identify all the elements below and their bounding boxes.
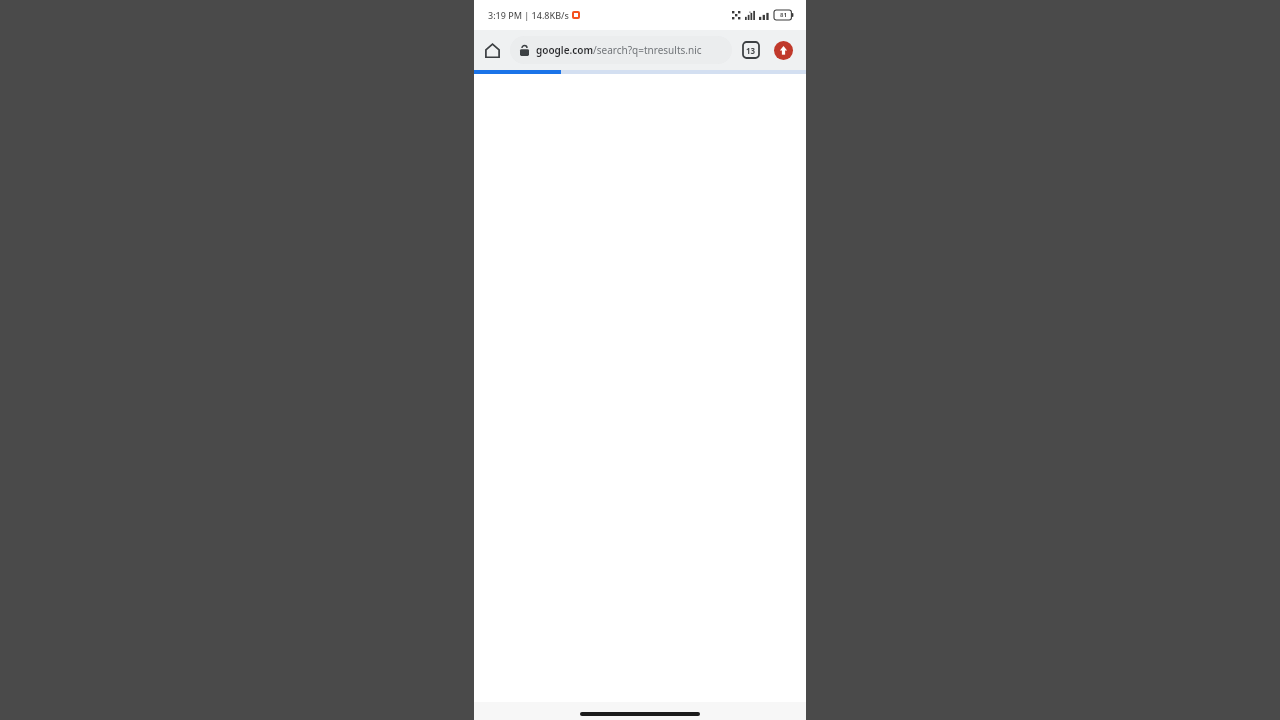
button[interactable]: Upload — [768, 35, 798, 65]
button[interactable]: Home gesture — [580, 712, 700, 716]
staticText: 3:19 PM | 14.8KB/s — [488, 9, 569, 21]
staticText: google.com/search?q=tnresults.nic — [536, 43, 702, 57]
staticText: 13 — [746, 45, 756, 56]
button[interactable]: Tab switcher, 13 tabs — [736, 35, 766, 65]
button[interactable]: google.com/search?q=tnresults.nic — [510, 36, 732, 64]
button[interactable]: Home — [474, 32, 510, 68]
staticText: 81 — [780, 11, 787, 19]
